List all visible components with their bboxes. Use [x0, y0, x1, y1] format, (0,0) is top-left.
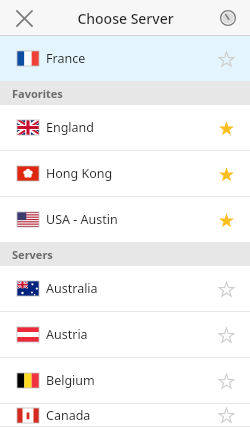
button[interactable]: Belgium [0, 358, 250, 404]
button[interactable]: Hong Kong [0, 151, 250, 197]
staticText: France [46, 50, 86, 67]
button[interactable]: Remove favorite [208, 110, 244, 146]
staticText: Hong Kong [46, 165, 113, 182]
button[interactable]: Add favorite [208, 404, 244, 426]
button[interactable]: England [0, 105, 250, 151]
button[interactable]: Australia [0, 266, 250, 312]
button[interactable]: Add favorite [208, 41, 244, 77]
staticText: USA - Austin [46, 211, 118, 228]
button[interactable]: Speed test [212, 2, 244, 34]
staticText: England [46, 119, 95, 136]
staticText: Austria [46, 326, 88, 343]
button[interactable]: Close [6, 0, 42, 36]
button[interactable]: Remove favorite [208, 202, 244, 238]
staticText: Australia [46, 280, 98, 297]
button[interactable]: France [0, 36, 250, 82]
button[interactable]: Austria [0, 312, 250, 358]
button[interactable]: USA - Austin [0, 197, 250, 243]
staticText: Belgium [46, 372, 95, 389]
button[interactable]: Add favorite [208, 363, 244, 399]
button[interactable]: Add favorite [208, 317, 244, 353]
staticText: Choose Server [77, 9, 174, 28]
staticText: Servers [12, 247, 53, 262]
button[interactable]: Remove favorite [208, 156, 244, 192]
staticText: Favorites [12, 86, 63, 101]
button[interactable]: Add favorite [208, 271, 244, 307]
staticText: Canada [46, 407, 91, 424]
button[interactable]: Canada [0, 404, 250, 427]
